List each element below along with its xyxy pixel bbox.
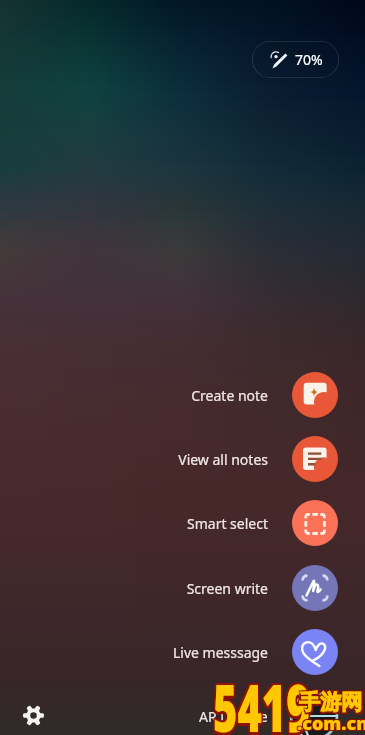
staticText: .com.cn bbox=[296, 710, 365, 735]
staticText: View all notes bbox=[178, 450, 268, 469]
staticText: .com.cn bbox=[298, 711, 365, 735]
staticText: 5419 bbox=[215, 663, 312, 735]
button[interactable]: View all notes bbox=[120, 436, 338, 482]
staticText: 手游网 bbox=[301, 691, 364, 717]
staticText: .com.cn bbox=[298, 710, 365, 735]
staticText: Create note bbox=[191, 386, 268, 405]
staticText: 手游网 bbox=[298, 688, 361, 714]
button[interactable]: Live messsage bbox=[120, 629, 338, 675]
staticText: .com.cn bbox=[297, 711, 365, 735]
staticText: .com.cn bbox=[298, 712, 365, 735]
staticText: 手游网 bbox=[299, 689, 362, 715]
staticText: 5419 bbox=[213, 663, 311, 735]
staticText: 5419 bbox=[215, 658, 312, 735]
button[interactable]: Settings bbox=[16, 698, 50, 732]
staticText: .com.cn bbox=[296, 711, 365, 735]
staticText: .com.cn bbox=[297, 710, 365, 735]
staticText: 5419 bbox=[211, 663, 309, 735]
staticText: .com.cn bbox=[297, 712, 365, 735]
button[interactable]: AR Doodle bbox=[120, 693, 338, 735]
button[interactable]: 70% bbox=[252, 41, 339, 78]
button[interactable]: Screen write bbox=[120, 565, 338, 611]
staticText: 手游网 bbox=[299, 691, 362, 717]
staticText: 手游网 bbox=[301, 688, 364, 714]
staticText: 70% bbox=[295, 50, 323, 69]
staticText: 5419 bbox=[211, 658, 309, 735]
staticText: 5419 bbox=[211, 661, 309, 735]
staticText: 手游网 bbox=[301, 689, 364, 715]
staticText: AR Doodle bbox=[199, 707, 268, 726]
staticText: .com.cn bbox=[296, 712, 365, 735]
staticText: 手游网 bbox=[298, 689, 361, 715]
staticText: Smart select bbox=[187, 514, 268, 533]
button[interactable]: Smart select bbox=[120, 500, 338, 546]
staticText: 手游网 bbox=[299, 688, 362, 714]
staticText: 5419 bbox=[213, 658, 311, 735]
staticText: Live messsage bbox=[172, 643, 268, 662]
staticText: 5419 bbox=[213, 661, 311, 735]
staticText: Screen write bbox=[186, 579, 268, 598]
staticText: 5419 bbox=[215, 661, 312, 735]
staticText: 手游网 bbox=[298, 691, 361, 717]
button[interactable]: Create note bbox=[120, 372, 338, 418]
